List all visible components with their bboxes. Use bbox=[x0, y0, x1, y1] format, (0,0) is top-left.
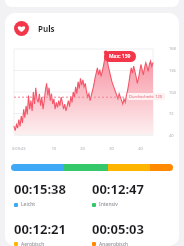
staticText: 136 bbox=[169, 68, 176, 73]
button[interactable]: 00:12:47 bbox=[92, 180, 170, 208]
button[interactable]: 00:15:38 bbox=[14, 180, 92, 208]
staticText: Intensiv bbox=[99, 201, 118, 208]
staticText: 40 bbox=[126, 146, 155, 151]
staticText: 30 bbox=[97, 146, 126, 151]
staticText: Leicht bbox=[21, 201, 36, 208]
staticText: 00:15:38 bbox=[14, 180, 66, 198]
staticText: 0:09:43 bbox=[12, 146, 40, 151]
button[interactable]: Puls bbox=[5, 13, 179, 43]
other: Puls bbox=[14, 21, 29, 36]
staticText: Anaerobisch bbox=[99, 241, 129, 246]
button[interactable] bbox=[5, 43, 179, 155]
staticText: Puls bbox=[38, 23, 55, 34]
staticText: 00:12:21 bbox=[14, 220, 66, 238]
staticText: 00:12:47 bbox=[92, 180, 144, 198]
button[interactable]: 00:12:21 bbox=[14, 220, 92, 246]
staticText: 168 bbox=[169, 46, 176, 51]
staticText: 40 bbox=[169, 133, 174, 138]
staticText: 20 bbox=[68, 146, 97, 151]
button[interactable]: Max: 159 bbox=[104, 51, 136, 62]
staticText: 00:05:03 bbox=[92, 220, 144, 238]
staticText: 104 bbox=[169, 90, 176, 95]
staticText: Aerobisch bbox=[21, 241, 45, 246]
staticText: 72 bbox=[169, 111, 174, 116]
staticText: Durchschnitt: 120 bbox=[129, 94, 163, 99]
staticText: Max: 159 bbox=[109, 53, 131, 60]
button[interactable]: 00:05:03 bbox=[92, 220, 170, 246]
staticText: 10 bbox=[40, 146, 68, 151]
button[interactable] bbox=[11, 164, 173, 171]
